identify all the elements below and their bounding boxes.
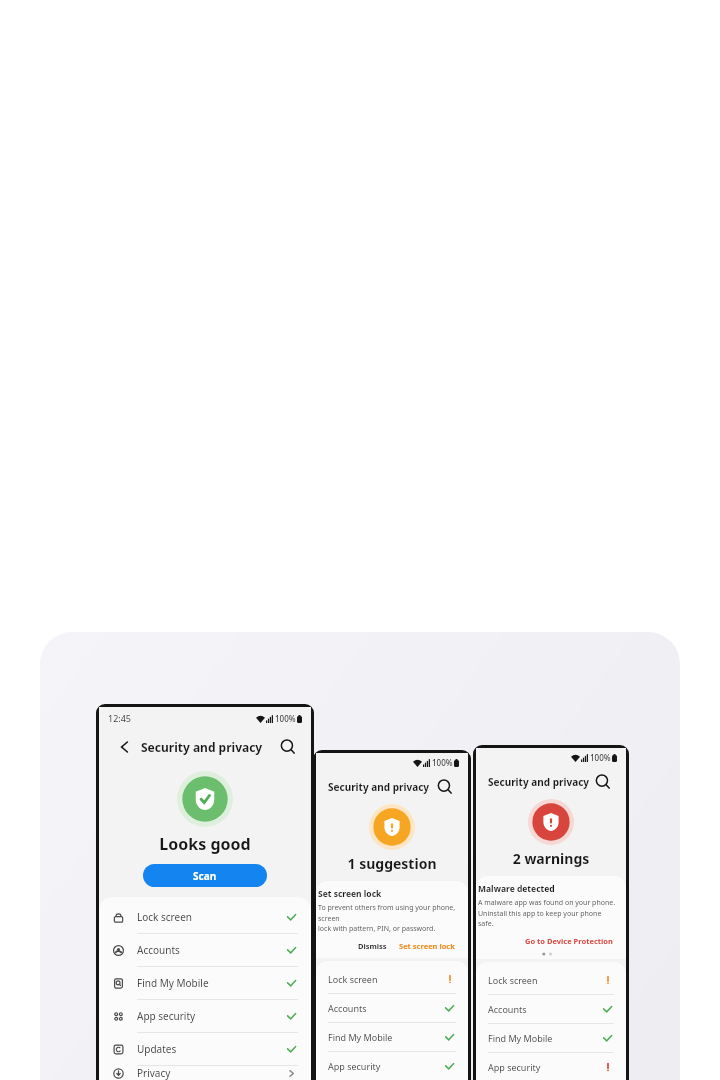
staticText: A malware app was found on your phone. U… [478, 898, 617, 928]
button[interactable]: Scan [143, 864, 267, 887]
button[interactable]: Set screen lock [395, 937, 459, 955]
staticText: Find My Mobile [328, 1031, 443, 1043]
button[interactable]: Search [279, 738, 297, 756]
staticText: Malware detected [478, 883, 555, 895]
button[interactable]: Accounts [99, 934, 311, 967]
button[interactable]: Accounts [316, 994, 468, 1023]
staticText: Security and privacy [488, 775, 590, 789]
staticText: 100% [590, 752, 611, 763]
button[interactable]: Go to Device Protection [521, 932, 617, 950]
staticText: Looks good [99, 833, 311, 855]
button[interactable]: Lock screen [99, 901, 311, 934]
staticText: 100% [432, 757, 453, 768]
button[interactable]: Search [436, 778, 454, 796]
button[interactable]: Find My Mobile [316, 1023, 468, 1052]
button[interactable]: Search [594, 773, 612, 791]
staticText: Security and privacy [328, 780, 430, 794]
staticText: Accounts [137, 943, 285, 957]
button[interactable]: App security [476, 1053, 626, 1080]
button[interactable]: Find My Mobile [99, 967, 311, 1000]
staticText: 1 suggestion [316, 854, 468, 873]
button[interactable]: Find My Mobile [476, 1024, 626, 1053]
staticText: Accounts [328, 1002, 443, 1014]
staticText: Go to Device Protection [525, 936, 613, 946]
button[interactable]: Updates [99, 1033, 311, 1066]
staticText: Lock screen [488, 974, 602, 986]
staticText: Find My Mobile [488, 1032, 601, 1044]
staticText: App security [488, 1061, 602, 1073]
button[interactable]: App security [99, 1000, 311, 1033]
staticText: App security [328, 1060, 443, 1072]
staticText: 100% [275, 713, 296, 724]
staticText: Accounts [488, 1003, 601, 1015]
staticText: Find My Mobile [137, 976, 285, 990]
staticText: Set screen lock [399, 941, 455, 951]
staticText: Scan [193, 869, 217, 883]
staticText: To prevent others from using your phone,… [318, 903, 459, 933]
staticText: App security [137, 1009, 285, 1023]
button[interactable]: Dismiss [354, 937, 391, 955]
button[interactable]: Lock screen [476, 966, 626, 995]
button[interactable]: Privacy [99, 1066, 311, 1080]
staticText: Privacy [137, 1066, 285, 1080]
button[interactable]: Back [115, 737, 135, 757]
staticText: 12:45 [108, 712, 132, 724]
button[interactable]: Accounts [476, 995, 626, 1024]
staticText: 2 warnings [476, 849, 626, 868]
staticText: Lock screen [328, 973, 444, 985]
button[interactable]: App security [316, 1052, 468, 1080]
staticText: Set screen lock [318, 888, 382, 900]
staticText: Dismiss [358, 941, 387, 951]
staticText: Lock screen [137, 910, 285, 924]
button[interactable]: Lock screen [316, 965, 468, 994]
staticText: Security and privacy [141, 739, 263, 755]
staticText: Updates [137, 1042, 285, 1056]
